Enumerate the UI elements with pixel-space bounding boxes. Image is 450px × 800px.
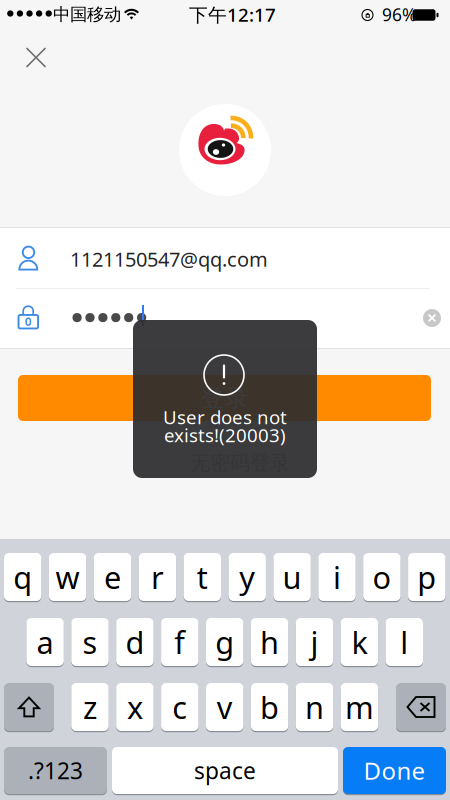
button[interactable]: j xyxy=(296,617,333,667)
button[interactable]: y xyxy=(228,552,266,602)
button[interactable]: Shift xyxy=(4,682,54,732)
staticText: t xyxy=(197,557,208,597)
button[interactable]: a xyxy=(26,617,64,667)
button[interactable]: h xyxy=(251,617,288,667)
staticText: n xyxy=(305,687,324,727)
button[interactable]: Clear xyxy=(423,309,441,327)
button[interactable]: 登录 xyxy=(18,375,431,421)
button[interactable]: f xyxy=(161,617,198,667)
staticText: 登录 xyxy=(200,383,248,413)
staticText: space xyxy=(194,755,256,785)
staticText: 下午12:17 xyxy=(189,2,276,27)
button[interactable]: x xyxy=(116,682,154,732)
button[interactable]: d xyxy=(116,617,154,667)
staticText: d xyxy=(125,622,144,662)
staticText: u xyxy=(283,557,302,597)
button[interactable]: s xyxy=(71,617,109,667)
staticText: z xyxy=(83,687,97,727)
button[interactable]: l xyxy=(386,617,423,667)
staticText: y xyxy=(239,557,255,597)
staticText: 1121150547@qq.com xyxy=(70,246,268,272)
staticText: m xyxy=(345,687,374,727)
staticText: c xyxy=(172,687,187,727)
staticText: v xyxy=(217,687,233,727)
staticText: a xyxy=(37,622,54,662)
button[interactable]: Done xyxy=(343,746,446,795)
button[interactable]: t xyxy=(184,552,221,602)
staticText: s xyxy=(82,622,97,662)
button[interactable]: g xyxy=(206,617,243,667)
button[interactable]: space xyxy=(112,746,338,795)
staticText: f xyxy=(174,622,185,662)
staticText: 中国移动 xyxy=(53,4,121,25)
button[interactable]: e xyxy=(94,552,131,602)
button[interactable]: Close xyxy=(14,37,56,79)
button[interactable]: r xyxy=(139,552,176,602)
staticText: j xyxy=(310,622,318,662)
staticText: .?123 xyxy=(28,755,83,785)
staticText: Done xyxy=(363,755,425,786)
button[interactable]: .?123 xyxy=(4,746,107,795)
staticText: k xyxy=(351,622,367,662)
button[interactable]: c xyxy=(161,682,198,732)
button[interactable]: v xyxy=(206,682,243,732)
button[interactable]: q xyxy=(4,552,41,602)
staticText: e xyxy=(104,557,121,597)
staticText: w xyxy=(56,557,80,597)
staticText: exists!(20003) xyxy=(164,423,286,447)
staticText: p xyxy=(417,557,436,597)
staticText: g xyxy=(215,622,234,662)
staticText: o xyxy=(372,557,391,597)
button[interactable]: z xyxy=(71,682,109,732)
staticText: 96% xyxy=(382,3,416,26)
button[interactable]: n xyxy=(296,682,333,732)
staticText: h xyxy=(260,622,279,662)
button[interactable]: o xyxy=(363,552,401,602)
staticText: x xyxy=(127,687,143,727)
staticText: l xyxy=(400,622,408,662)
staticText: r xyxy=(151,557,164,597)
button[interactable]: w xyxy=(49,552,86,602)
staticText: i xyxy=(333,557,341,597)
button[interactable]: i xyxy=(318,552,356,602)
button[interactable]: b xyxy=(251,682,288,732)
button[interactable]: m xyxy=(341,682,378,732)
button[interactable]: Delete xyxy=(396,682,446,732)
button[interactable]: k xyxy=(341,617,378,667)
staticText: q xyxy=(13,557,32,597)
staticText: User does not xyxy=(163,405,287,429)
button[interactable]: p xyxy=(408,552,445,602)
staticText: b xyxy=(260,687,279,727)
button[interactable]: u xyxy=(273,552,311,602)
